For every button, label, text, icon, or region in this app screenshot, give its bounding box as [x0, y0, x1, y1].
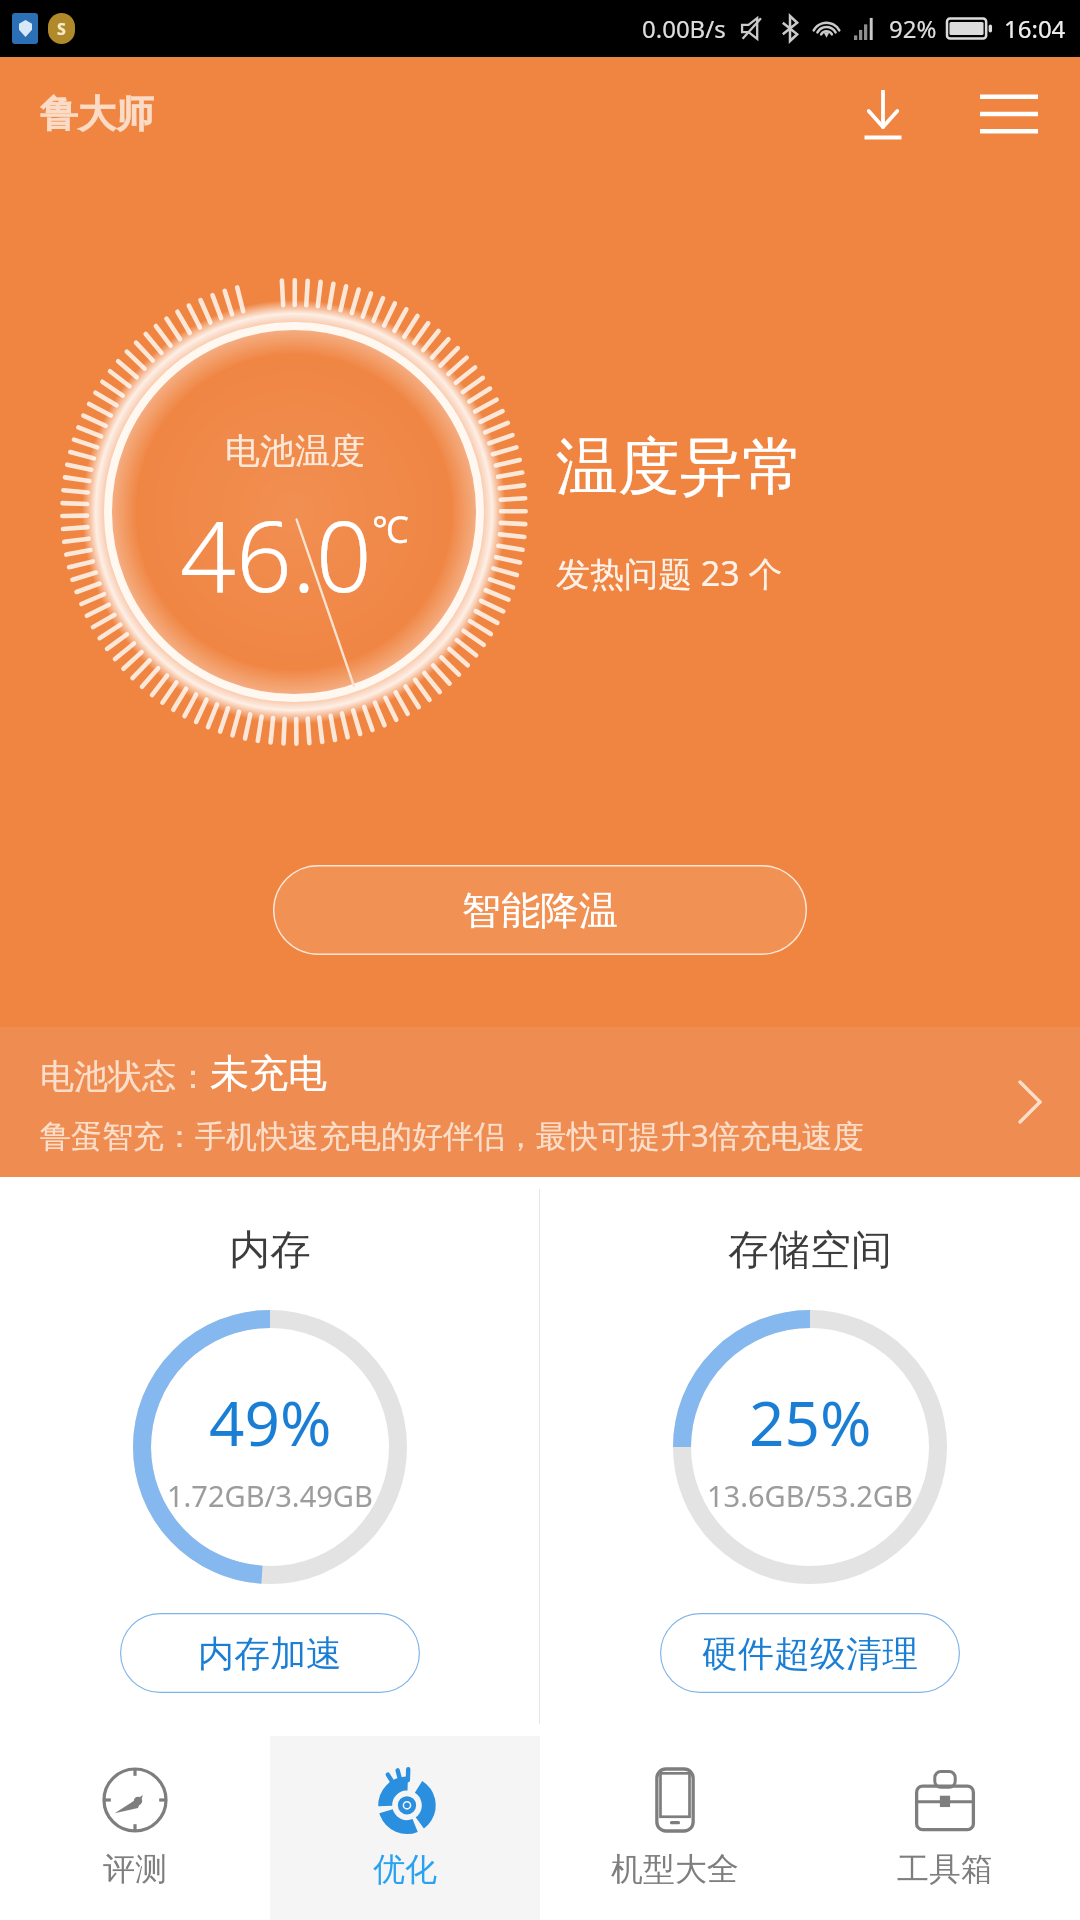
- staticText: 硬件超级清理: [702, 1631, 918, 1676]
- button[interactable]: 优化: [270, 1736, 540, 1920]
- button[interactable]: Menu: [970, 75, 1048, 153]
- staticText: 0.00B/s: [642, 12, 726, 45]
- staticText: 25%: [749, 1380, 872, 1464]
- button[interactable]: Download: [844, 75, 922, 153]
- staticText: 电池状态：: [40, 1055, 210, 1098]
- button[interactable]: 机型大全: [540, 1736, 810, 1920]
- staticText: 92%: [889, 12, 937, 45]
- staticText: S: [57, 18, 66, 40]
- staticText: 未充电: [210, 1049, 327, 1098]
- staticText: 电池温度: [225, 429, 365, 473]
- button[interactable]: 评测: [0, 1736, 270, 1920]
- staticText: 智能降温: [462, 886, 618, 935]
- staticText: 鲁大师: [40, 90, 154, 138]
- button[interactable]: 智能降温: [273, 865, 807, 955]
- staticText: 评测: [103, 1849, 167, 1889]
- staticText: 49%: [209, 1380, 332, 1464]
- staticText: 内存: [229, 1225, 311, 1277]
- staticText: 存储空间: [728, 1225, 892, 1277]
- button[interactable]: 硬件超级清理: [660, 1613, 960, 1693]
- staticText: 发热问题 23 个: [556, 550, 783, 596]
- staticText: 优化: [373, 1849, 437, 1889]
- staticText: 46.0: [180, 487, 372, 620]
- staticText: 机型大全: [611, 1849, 739, 1889]
- button[interactable]: 内存加速: [120, 1613, 420, 1693]
- staticText: 16:04: [1004, 12, 1066, 45]
- staticText: 1.72GB/3.49GB: [167, 1476, 373, 1515]
- staticText: ℃: [372, 503, 409, 553]
- staticText: 温度异常: [556, 428, 804, 506]
- staticText: 鲁蛋智充：手机快速充电的好伴侣，最快可提升3倍充电速度: [40, 1114, 864, 1156]
- button[interactable]: 工具箱: [810, 1736, 1080, 1920]
- staticText: 内存加速: [198, 1631, 342, 1676]
- staticText: 13.6GB/53.2GB: [707, 1476, 913, 1515]
- button[interactable]: 电池状态：: [0, 1027, 1080, 1177]
- staticText: 工具箱: [897, 1849, 993, 1889]
